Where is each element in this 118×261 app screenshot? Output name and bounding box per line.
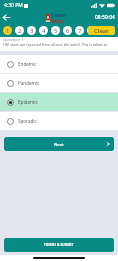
button[interactable]: 6 — [63, 26, 72, 35]
button[interactable]: Clear — [88, 26, 115, 35]
staticText: 6 — [66, 27, 70, 35]
staticText: 5 — [54, 27, 58, 35]
staticText: Pandemic — [18, 80, 40, 86]
staticText: Career — [51, 12, 67, 18]
staticText: 7 — [78, 27, 82, 35]
staticText: 08:59:04 — [95, 14, 115, 21]
button[interactable]: 7 — [75, 26, 84, 35]
staticText: Endemic — [18, 61, 37, 67]
staticText: HIV cases are reported from all over the… — [3, 42, 108, 47]
button[interactable]: Next — [4, 137, 114, 151]
staticText: Question 1 — [3, 37, 24, 42]
staticText: 2 — [18, 27, 22, 35]
button[interactable]: 4 — [39, 26, 48, 35]
button[interactable]: Epidemic — [0, 93, 118, 111]
staticText: Sporadic — [18, 118, 37, 124]
staticText: Next — [54, 141, 64, 147]
button[interactable]: Back — [0, 11, 13, 24]
staticText: FINISH & SUBMIT — [44, 243, 74, 247]
button[interactable]: FINISH & SUBMIT — [4, 238, 114, 252]
staticText: 3 — [30, 27, 34, 35]
button[interactable]: 1 — [3, 26, 12, 35]
staticText: 4:30 PM — [4, 2, 23, 9]
button[interactable]: Sporadic — [0, 112, 118, 130]
staticText: Epidemic — [18, 99, 38, 105]
button[interactable]: 3 — [27, 26, 36, 35]
staticText: Vidya — [51, 18, 64, 24]
staticText: 4 — [42, 27, 46, 35]
staticText: Clear — [94, 27, 109, 35]
staticText: 1 — [6, 27, 10, 35]
button[interactable]: Endemic — [0, 55, 118, 73]
button[interactable]: Pandemic — [0, 74, 118, 92]
button[interactable]: 2 — [15, 26, 24, 35]
button[interactable]: 5 — [51, 26, 60, 35]
button[interactable]: 8 — [87, 26, 96, 35]
